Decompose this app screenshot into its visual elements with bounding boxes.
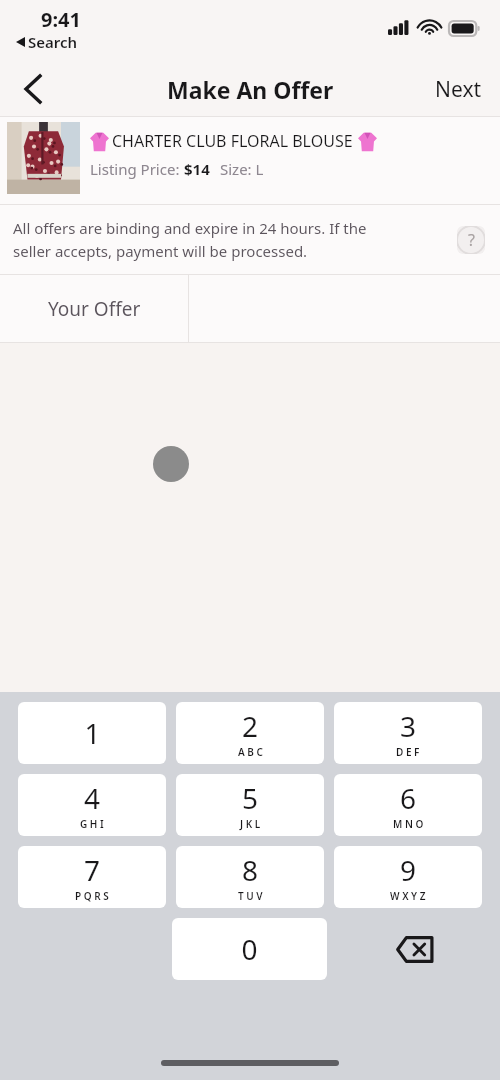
button[interactable]: Help [457, 226, 485, 254]
button[interactable]: 4 [18, 774, 166, 836]
button[interactable]: 8 [176, 846, 324, 908]
button[interactable]: 5 [176, 774, 324, 836]
staticText: Next [435, 75, 482, 104]
staticText: T U V [238, 889, 263, 903]
button[interactable]: 0 [172, 918, 327, 980]
staticText: 0 [241, 930, 258, 968]
button[interactable]: Delete [337, 918, 492, 980]
button[interactable]: 2 [176, 702, 324, 764]
staticText: All offers are binding and expire in 24 … [13, 218, 367, 238]
staticText: G H I [80, 817, 104, 831]
button[interactable]: Next [417, 62, 500, 116]
staticText: W X Y Z [390, 889, 426, 903]
button[interactable]: 9 [334, 846, 482, 908]
staticText: 6 [400, 779, 417, 817]
staticText: 7 [84, 851, 101, 889]
staticText: 4 [84, 779, 101, 817]
staticText: Make An Offer [167, 74, 334, 105]
staticText: 2 [242, 707, 259, 745]
button[interactable]: 6 [334, 774, 482, 836]
staticText: 9:41 [41, 6, 81, 33]
staticText: Listing Price: [90, 159, 184, 179]
staticText: $14 [184, 159, 210, 179]
button[interactable]: Back [0, 62, 66, 116]
staticText: Search [28, 32, 78, 52]
button[interactable]: 7 [18, 846, 166, 908]
staticText: 8 [242, 851, 259, 889]
button[interactable]: 1 [18, 702, 166, 764]
staticText: Size: L [220, 159, 264, 179]
staticText: 3 [400, 707, 417, 745]
staticText: Your Offer [48, 296, 141, 322]
button[interactable]: CHARTER CLUB FLORAL BLOUSE [0, 117, 500, 204]
staticText: CHARTER CLUB FLORAL BLOUSE [112, 130, 353, 152]
staticText: 5 [242, 779, 259, 817]
staticText: P Q R S [75, 889, 109, 903]
staticText: ? [468, 229, 475, 251]
staticText: A B C [238, 745, 263, 759]
button[interactable]: 3 [334, 702, 482, 764]
staticText: 9 [400, 851, 417, 889]
staticText: J K L [240, 817, 261, 831]
staticText: D E F [396, 745, 420, 759]
staticText: M N O [393, 817, 424, 831]
staticText: 1 [84, 714, 101, 752]
button[interactable]: Your Offer [0, 275, 188, 342]
staticText: seller accepts, payment will be processe… [13, 241, 308, 261]
